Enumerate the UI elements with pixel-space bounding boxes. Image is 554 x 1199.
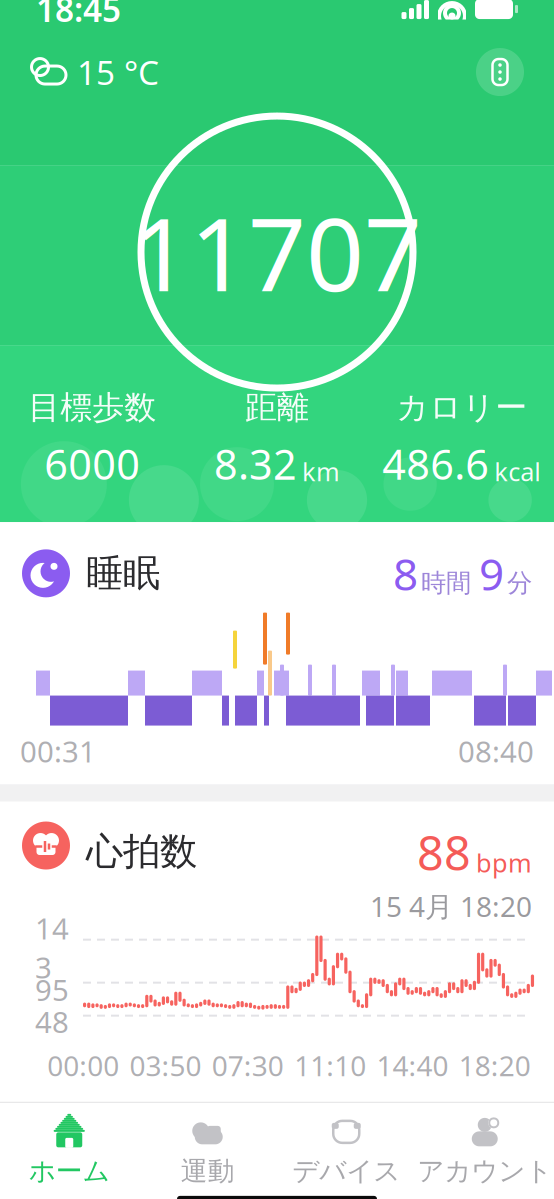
- staticText: kcal: [494, 455, 541, 488]
- staticText: 14:40: [376, 1047, 448, 1084]
- staticText: アカウント: [417, 1155, 552, 1188]
- staticText: 心拍数: [86, 828, 197, 874]
- staticText: km: [302, 455, 340, 488]
- staticText: 目標歩数: [28, 388, 156, 427]
- staticText: 8: [393, 544, 418, 602]
- staticText: 9: [479, 544, 504, 602]
- staticText: デバイス: [292, 1155, 400, 1188]
- staticText: 95: [35, 970, 69, 1009]
- staticText: 486.6: [382, 436, 489, 491]
- staticText: 距離: [245, 388, 309, 427]
- staticText: 11707: [132, 185, 422, 319]
- staticText: 88: [417, 821, 471, 883]
- staticText: 睡眠: [86, 550, 160, 596]
- staticText: 00:00: [47, 1047, 119, 1084]
- staticText: 15 °C: [77, 50, 159, 94]
- button[interactable]: デバイス: [277, 1113, 415, 1190]
- staticText: 15 4月 18:20: [370, 887, 532, 925]
- staticText: 運動: [181, 1155, 235, 1188]
- staticText: 08:40: [458, 732, 534, 771]
- staticText: 分: [507, 567, 532, 599]
- staticText: 8.32: [214, 436, 297, 491]
- button[interactable]: 睡眠: [0, 522, 554, 784]
- staticText: 03:50: [129, 1047, 201, 1084]
- staticText: 時間: [421, 567, 471, 599]
- staticText: bpm: [476, 846, 532, 879]
- staticText: 18:20: [459, 1047, 531, 1084]
- staticText: ホーム: [29, 1155, 110, 1188]
- staticText: 11:10: [294, 1047, 366, 1084]
- staticText: 18:45: [36, 0, 121, 31]
- button[interactable]: 心拍数: [0, 801, 554, 1102]
- staticText: 00:31: [20, 732, 96, 771]
- button[interactable]: アカウント: [415, 1113, 554, 1190]
- button[interactable]: 運動: [138, 1113, 277, 1190]
- staticText: 143: [35, 909, 69, 987]
- button[interactable]: ホーム: [0, 1113, 138, 1190]
- staticText: 07:30: [212, 1047, 284, 1084]
- button[interactable]: My device: [476, 48, 524, 96]
- staticText: 6000: [44, 436, 140, 491]
- staticText: 48: [35, 1002, 69, 1041]
- staticText: カロリー: [396, 388, 527, 427]
